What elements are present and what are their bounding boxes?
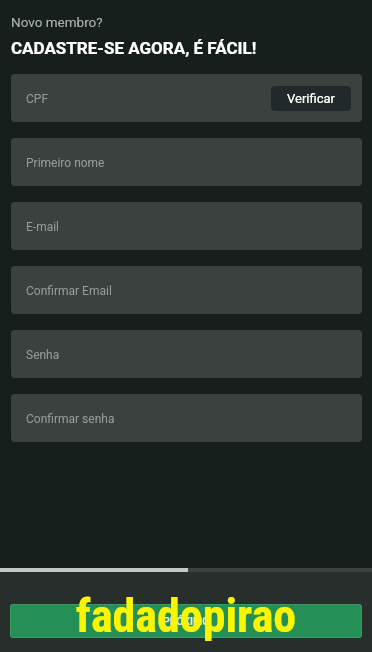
- staticText: Confirmar senha: [26, 412, 115, 426]
- staticText: E-mail: [26, 220, 60, 234]
- button[interactable]: Primeiro nome: [11, 138, 362, 186]
- button[interactable]: Senha: [11, 330, 362, 378]
- button[interactable]: Confirmar senha: [11, 394, 362, 442]
- button[interactable]: PRÓXIMO: [11, 605, 361, 637]
- staticText: Primeiro nome: [26, 156, 105, 170]
- button[interactable]: E-mail: [11, 202, 362, 250]
- staticText: PRÓXIMO: [163, 615, 210, 627]
- button[interactable]: Verificar: [271, 86, 351, 111]
- staticText: CADASTRE-SE AGORA, É FÁCIL!: [11, 38, 257, 58]
- staticText: CPF: [26, 92, 49, 106]
- staticText: Confirmar Email: [26, 284, 112, 298]
- staticText: Senha: [26, 348, 60, 362]
- staticText: Verificar: [287, 91, 335, 106]
- staticText: Novo membro?: [11, 14, 103, 30]
- staticText: fadadopirao: [0, 589, 372, 643]
- button[interactable]: Confirmar Email: [11, 266, 362, 314]
- button[interactable]: CPF: [11, 74, 362, 122]
